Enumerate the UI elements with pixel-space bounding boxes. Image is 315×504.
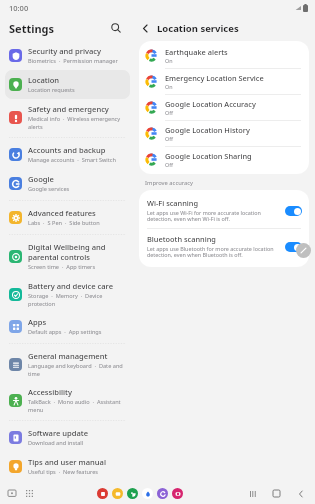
button[interactable]: Wi-Fi scanning [139,193,309,228]
button[interactable]: Digital Wellbeing and parental controls [5,237,130,276]
staticText: Download and install [28,439,84,447]
button[interactable]: swirl [157,488,168,499]
staticText: General management [28,351,108,361]
button[interactable]: Software update [5,423,130,452]
staticText: Google Location History [165,125,250,135]
staticText: Earthquake alerts [165,47,228,57]
button[interactable]: cam [172,488,183,499]
staticText: Off [165,161,173,168]
staticText: Language and keyboard · Date and time [28,362,126,377]
button[interactable]: Search [108,20,124,36]
button[interactable]: Back [295,488,306,499]
button[interactable]: Security and privacy [5,41,130,70]
staticText: Let apps use Bluetooth for more accurate… [147,245,279,259]
staticText: Manage accounts · Smart Switch [28,156,116,164]
staticText: Biometrics · Permission manager [28,57,118,65]
button[interactable]: Safety and emergency [5,99,130,135]
staticText: Medical info · Wireless emergency alerts [28,115,126,130]
button[interactable]: Location [5,70,130,99]
button[interactable]: Back [138,21,153,36]
staticText: On [165,83,173,90]
staticText: Default apps · App settings [28,328,102,336]
button[interactable]: Google [5,169,130,198]
staticText: Emergency Location Service [165,73,264,83]
staticText: Digital Wellbeing and parental controls [28,242,126,262]
staticText: Advanced features [28,208,96,218]
staticText: Improve accuracy [145,179,194,187]
button[interactable]: pshape [97,488,108,499]
button[interactable]: Google Location Sharing [139,147,309,172]
staticText: Let apps use Wi-Fi for more accurate loc… [147,209,279,223]
button[interactable]: Apps [5,312,130,341]
staticText: Labs · S Pen · Side button [28,219,100,227]
button[interactable]: Apps [24,488,35,499]
button[interactable]: Accessibility [5,382,130,418]
button[interactable]: Battery and device care [5,276,130,312]
staticText: 10:00 [9,3,29,13]
staticText: Google [28,174,54,184]
button[interactable]: Edit [296,243,311,258]
staticText: Apps [28,317,47,327]
staticText: Location requests [28,86,75,94]
button[interactable]: drop [142,488,153,499]
staticText: Google services [28,185,70,193]
button[interactable]: Accounts and backup [5,140,130,169]
staticText: TalkBack · Mono audio · Assistant menu [28,398,126,413]
staticText: Security and privacy [28,46,102,56]
button[interactable]: Google Location Accuracy [139,95,309,120]
staticText: Off [165,109,173,116]
staticText: Location [28,75,60,85]
staticText: Accessibility [28,387,72,397]
button[interactable]: phone [127,488,138,499]
staticText: Wi-Fi scanning [147,198,199,208]
button[interactable]: Earthquake alerts [139,43,309,68]
staticText: Tips and user manual [28,457,106,467]
staticText: Google Location Accuracy [165,99,256,109]
button[interactable]: Bluetooth scanning [139,229,309,264]
staticText: Useful tips · New features [28,468,98,476]
button[interactable]: Advanced features [5,203,130,232]
staticText: Accounts and backup [28,145,106,155]
staticText: Storage · Memory · Device protection [28,292,126,307]
staticText: Battery and device care [28,281,113,291]
staticText: Settings [9,21,55,36]
button[interactable]: Google Location History [139,121,309,146]
button[interactable]: Recent apps [247,488,258,499]
staticText: On [165,57,173,64]
button[interactable]: Recents [6,488,17,499]
staticText: Off [165,135,173,142]
button[interactable]: Tips and user manual [5,452,130,481]
button[interactable]: Home [271,488,282,499]
staticText: Screen time · App timers [28,263,96,271]
button[interactable] [285,242,302,252]
button[interactable]: folder [112,488,123,499]
button[interactable] [285,206,302,216]
staticText: Bluetooth scanning [147,234,216,244]
staticText: Google Location Sharing [165,151,252,161]
staticText: Safety and emergency [28,104,109,114]
button[interactable]: Emergency Location Service [139,69,309,94]
staticText: Software update [28,428,89,438]
staticText: Location services [157,22,239,35]
button[interactable]: General management [5,346,130,382]
